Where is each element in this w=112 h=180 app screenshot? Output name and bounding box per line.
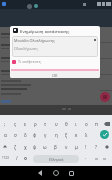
button[interactable]: ζ — [10, 141, 20, 153]
staticText: ; — [4, 121, 6, 127]
staticText: Ολοκλήρωση — [14, 46, 38, 51]
staticText: λ — [85, 132, 88, 138]
button[interactable]: ? — [91, 141, 101, 153]
staticText: α — [4, 132, 7, 138]
button[interactable]: Μονάδα Ολοκλήρωσης — [12, 36, 98, 57]
staticText: ω — [43, 144, 47, 150]
staticText: ! — [85, 144, 87, 150]
button[interactable]: φ — [30, 129, 40, 141]
staticText: ν — [65, 144, 68, 150]
button[interactable]: Ελληνικά — [33, 155, 79, 163]
button[interactable]: γ — [40, 129, 50, 141]
button[interactable] — [100, 130, 109, 139]
staticText: ς — [14, 121, 17, 127]
staticText: κ — [75, 132, 78, 138]
button[interactable]: ψ — [30, 141, 40, 153]
staticText: ? — [95, 144, 97, 150]
staticText: Ελληνικά — [49, 157, 64, 162]
staticText: β — [54, 144, 57, 150]
staticText: ξ — [65, 132, 68, 138]
staticText: ρ — [34, 121, 37, 127]
staticText: . — [85, 154, 87, 160]
button[interactable]: τ — [40, 118, 50, 129]
staticText: π — [95, 121, 98, 127]
button[interactable] — [36, 169, 44, 177]
button[interactable]: α — [0, 129, 10, 141]
staticText: ι — [75, 121, 77, 127]
button[interactable]: Τι σκέφτεστε; — [12, 59, 42, 64]
staticText: Μονάδα Ολοκλήρωσης — [14, 38, 55, 43]
staticText: δ — [24, 132, 27, 138]
staticText: τ — [44, 121, 47, 127]
button[interactable]: ν — [61, 141, 71, 153]
button[interactable]: ! — [81, 141, 91, 153]
staticText: σ — [14, 132, 17, 138]
button[interactable]: ο — [81, 118, 91, 129]
button[interactable] — [67, 169, 75, 177]
staticText: Ενημέρωση κατάστασης — [20, 28, 70, 34]
button[interactable]: μ — [71, 141, 81, 153]
button[interactable]: ξ — [61, 129, 71, 141]
button[interactable]: λ — [81, 129, 91, 141]
button[interactable] — [101, 118, 112, 129]
button[interactable]: OK — [46, 72, 63, 78]
button[interactable]: ω — [40, 141, 50, 153]
staticText: η — [55, 132, 58, 138]
button[interactable]: ρ — [30, 118, 40, 129]
button[interactable]: σ — [10, 129, 20, 141]
button[interactable]: π — [91, 118, 101, 129]
staticText: ε — [24, 121, 27, 127]
button[interactable]: ι — [71, 118, 81, 129]
staticText: ψ — [33, 144, 37, 150]
staticText: Τι σκέφτεστε; — [18, 59, 42, 64]
button[interactable]: δ — [20, 129, 30, 141]
button[interactable] — [52, 169, 60, 177]
staticText: OK — [52, 73, 58, 78]
staticText: ζ — [14, 144, 17, 150]
button[interactable]: ς — [10, 118, 20, 129]
button[interactable] — [0, 141, 10, 153]
staticText: μ — [75, 144, 78, 150]
staticText: ο — [85, 121, 88, 127]
button[interactable]: κ — [71, 129, 81, 141]
button[interactable]: χ — [20, 141, 30, 153]
button[interactable]: ε — [20, 118, 30, 129]
staticText: χ — [24, 144, 27, 150]
staticText: / — [16, 155, 18, 161]
staticText: φ — [33, 132, 37, 138]
button[interactable]: η — [51, 129, 61, 141]
staticText: θ — [65, 121, 68, 127]
staticText: υ — [55, 121, 58, 127]
button[interactable]: υ — [51, 118, 61, 129]
button[interactable]: ; — [0, 118, 10, 129]
staticText: ?123 — [2, 156, 9, 160]
button[interactable]: β — [50, 141, 60, 153]
button[interactable]: θ — [61, 118, 71, 129]
staticText: γ — [44, 132, 47, 138]
button[interactable] — [101, 141, 112, 153]
